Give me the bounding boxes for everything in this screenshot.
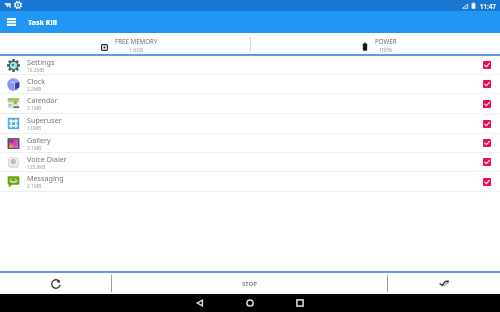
- staticText: 2.2MB: [27, 86, 42, 93]
- staticText: POWER: [375, 37, 397, 45]
- staticText: Settings: [27, 57, 55, 67]
- staticText: Messaging: [27, 173, 64, 183]
- button[interactable]: FREE MEMORY: [0, 33, 250, 54]
- staticText: Clock: [27, 76, 46, 86]
- button[interactable]: Gallery: [0, 134, 500, 152]
- staticText: 1.6GB: [129, 46, 144, 53]
- staticText: Superuser: [27, 115, 62, 125]
- staticText: Gallery: [27, 135, 51, 145]
- staticText: 100%: [379, 46, 393, 53]
- staticText: Calendar: [27, 95, 58, 105]
- button[interactable]: Back: [188, 294, 212, 312]
- button[interactable]: Select Gallery: [483, 139, 491, 147]
- button[interactable]: Recents: [288, 294, 312, 312]
- button[interactable]: POWER: [250, 33, 500, 54]
- staticText: STOP: [242, 280, 257, 288]
- button[interactable]: Refresh: [0, 273, 111, 294]
- staticText: 2.1MB: [27, 183, 42, 190]
- button[interactable]: Clock: [0, 75, 500, 93]
- staticText: 11:47: [480, 2, 496, 10]
- button[interactable]: Select Calendar: [483, 100, 491, 108]
- button[interactable]: Select Messaging: [483, 178, 491, 186]
- button[interactable]: Settings: [0, 56, 500, 74]
- button[interactable]: Select Voice Dialer: [483, 158, 491, 166]
- staticText: Voice Dialer: [27, 154, 67, 164]
- button[interactable]: Superuser: [0, 114, 500, 133]
- button[interactable]: Select Settings: [483, 61, 491, 69]
- button[interactable]: Messaging: [0, 172, 500, 191]
- button[interactable]: Calendar: [0, 94, 500, 113]
- button[interactable]: Home: [238, 294, 262, 312]
- button[interactable]: STOP: [112, 273, 387, 294]
- staticText: 125.9KB: [27, 164, 46, 171]
- staticText: FREE MEMORY: [115, 37, 158, 45]
- staticText: Task Kill: [28, 17, 58, 27]
- button[interactable]: Voice Dialer: [0, 153, 500, 171]
- staticText: 1.0MB: [27, 125, 42, 132]
- staticText: 16.2MB: [27, 67, 44, 74]
- staticText: 5.1MB: [27, 145, 42, 152]
- button[interactable]: Select all: [388, 273, 500, 294]
- staticText: 2.1MB: [27, 105, 42, 112]
- button[interactable]: Select Clock: [483, 80, 491, 88]
- button[interactable]: Menu: [0, 11, 22, 33]
- button[interactable]: Select Superuser: [483, 120, 491, 128]
